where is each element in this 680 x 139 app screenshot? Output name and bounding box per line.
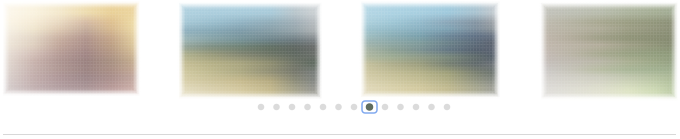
button[interactable]: Page 11 (413, 99, 419, 115)
button[interactable]: Page 1 (258, 99, 264, 115)
button[interactable]: Page 7 (351, 99, 357, 115)
button[interactable]: Page 8 (366, 99, 372, 115)
button[interactable]: Page 12 (428, 99, 434, 115)
button[interactable]: Page 9 (382, 99, 388, 115)
button[interactable]: Page 13 (444, 99, 450, 115)
button[interactable]: Page 10 (397, 99, 403, 115)
button[interactable]: Page 5 (320, 99, 326, 115)
button[interactable]: Page 4 (304, 99, 310, 115)
button[interactable]: Page 2 (273, 99, 279, 115)
button[interactable]: Page 6 (335, 99, 341, 115)
button[interactable]: Page 3 (289, 99, 295, 115)
